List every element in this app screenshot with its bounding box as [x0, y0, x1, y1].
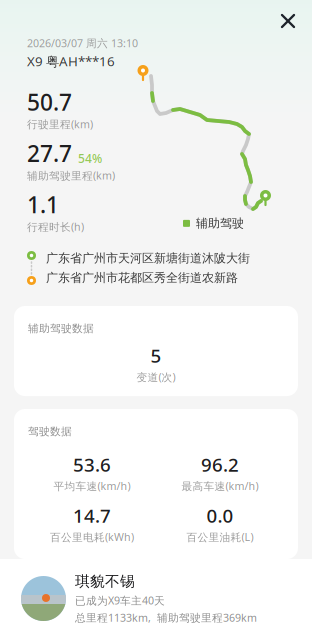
staticText: 54% [78, 150, 102, 166]
staticText: 广东省广州市天河区新塘街道沐陂大街 [46, 251, 250, 266]
staticText: 1.1 [27, 189, 59, 220]
staticText: 最高车速(km/h) [181, 479, 258, 493]
staticText: 0.0 [206, 503, 233, 528]
staticText: 辅助驾驶数据 [28, 322, 94, 335]
staticText: 辅助驾驶里程(km) [27, 168, 115, 182]
staticText: 琪貌不锡 [75, 572, 135, 590]
staticText: 百公里油耗(L) [186, 530, 253, 544]
staticText: 行程时长(h) [27, 220, 84, 234]
staticText: 平均车速(km/h) [53, 479, 130, 493]
staticText: 辅助驾驶 [196, 216, 244, 231]
staticText: 广东省广州市花都区秀全街道农新路 [46, 270, 238, 285]
staticText: 14.7 [73, 503, 111, 528]
staticText: 5 [150, 343, 161, 368]
staticText: 27.7 [27, 138, 72, 168]
staticText: 已成为X9车主40天 [75, 593, 165, 607]
staticText: 百公里电耗(kWh) [50, 530, 134, 544]
button[interactable]: Close [272, 5, 304, 37]
staticText: 变道(次) [136, 370, 175, 384]
staticText: 2026/03/07 周六 13:10 [27, 36, 138, 50]
staticText: 驾驶数据 [28, 425, 72, 438]
staticText: 96.2 [201, 452, 239, 477]
staticText: 行驶里程(km) [27, 117, 93, 131]
staticText: 50.7 [27, 87, 72, 117]
button[interactable]: 琪貌不锡 [0, 559, 312, 638]
staticText: X9 粤AH***16 [27, 52, 115, 70]
staticText: 总里程1133km, 辅助驾驶里程369km [75, 610, 257, 625]
staticText: 53.6 [73, 452, 111, 477]
